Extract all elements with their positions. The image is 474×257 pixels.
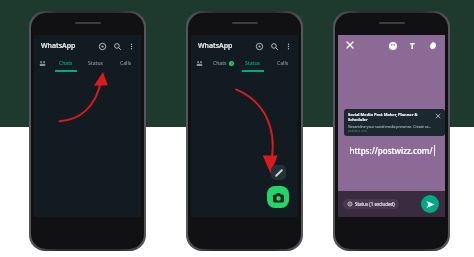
button[interactable]: Calls bbox=[268, 56, 298, 70]
button[interactable]: Social Media Post Maker, Planner & Sched… bbox=[344, 109, 445, 136]
staticText: Status bbox=[245, 60, 261, 67]
staticText: Social Media Post Maker, Planner & Sched… bbox=[348, 112, 433, 122]
button[interactable]: Communities bbox=[34, 56, 51, 70]
staticText: T bbox=[410, 40, 415, 51]
button[interactable]: Status bbox=[81, 56, 111, 70]
button[interactable]: T bbox=[406, 39, 419, 52]
button[interactable]: Status bbox=[238, 56, 268, 70]
button[interactable]: More options bbox=[126, 41, 136, 51]
button[interactable]: Send bbox=[421, 195, 439, 213]
button[interactable]: Background color bbox=[426, 39, 439, 52]
button[interactable]: Search bbox=[111, 40, 123, 52]
button[interactable]: Camera bbox=[96, 40, 108, 52]
staticText: postwizz.com bbox=[348, 129, 367, 133]
button[interactable]: Search bbox=[268, 40, 280, 52]
button[interactable]: Camera bbox=[253, 40, 265, 52]
button[interactable]: Chats bbox=[51, 56, 81, 70]
staticText: Chats bbox=[213, 60, 227, 67]
button[interactable]: Chats bbox=[208, 56, 238, 70]
staticText: https://postwizz.com/ bbox=[349, 145, 433, 156]
button[interactable]: Calls bbox=[111, 56, 141, 70]
button[interactable]: Write status bbox=[271, 165, 286, 180]
staticText: Calls bbox=[277, 60, 289, 67]
staticText: Status bbox=[88, 60, 104, 67]
button[interactable]: Status (1 excluded) bbox=[343, 199, 399, 209]
button[interactable]: Remove preview bbox=[434, 112, 441, 119]
staticText: Status (1 excluded) bbox=[355, 201, 395, 207]
staticText: Chats bbox=[59, 60, 73, 67]
staticText: Calls bbox=[120, 60, 132, 67]
button[interactable]: Emoji bbox=[386, 39, 399, 52]
staticText: 9 bbox=[231, 62, 233, 66]
staticText: Streamline your social media presence. C… bbox=[348, 124, 433, 129]
staticText: WhatsApp bbox=[41, 41, 76, 51]
button[interactable]: Camera bbox=[267, 186, 289, 208]
button[interactable]: Close bbox=[344, 39, 356, 51]
button[interactable]: Communities bbox=[191, 56, 208, 70]
staticText: WhatsApp bbox=[198, 41, 233, 51]
button[interactable]: More options bbox=[283, 41, 293, 51]
